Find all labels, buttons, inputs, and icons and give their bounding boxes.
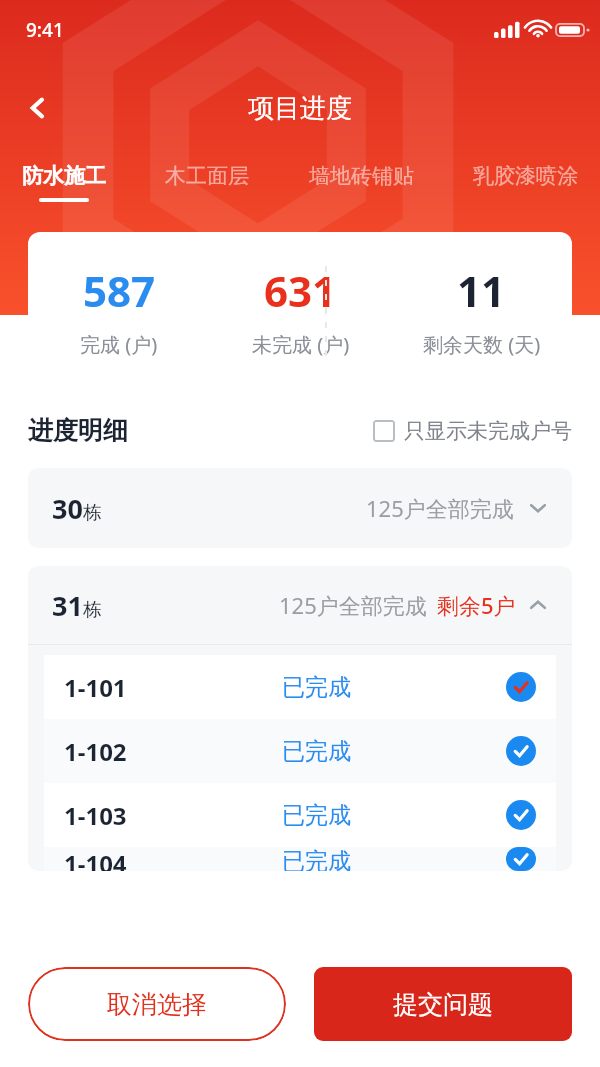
button[interactable]: 1-101 — [64, 655, 536, 719]
staticText: 30 — [52, 490, 83, 527]
staticText: 125户全部完成 — [366, 493, 514, 523]
staticText: 1-104 — [64, 847, 127, 871]
staticText: 取消选择 — [107, 989, 207, 1020]
staticText: 未完成 (户) — [252, 331, 350, 358]
button[interactable]: 乳胶漆喷涂 — [473, 163, 578, 202]
staticText: 已完成 — [282, 673, 351, 702]
other: Completed — [506, 800, 536, 830]
staticText: 栋 — [83, 501, 102, 525]
button[interactable]: 1-104 — [64, 847, 536, 871]
other: Completed — [506, 736, 536, 766]
button[interactable]: 只显示未完成户号 — [373, 418, 572, 444]
staticText: 已完成 — [282, 847, 351, 871]
button[interactable]: 木工面层 — [165, 163, 249, 202]
button[interactable]: 30 — [28, 468, 572, 548]
button[interactable]: Back — [14, 84, 62, 132]
other: Completed — [506, 847, 536, 871]
button[interactable]: 587 — [28, 232, 210, 387]
button[interactable]: 取消选择 — [28, 967, 286, 1041]
staticText: 1-102 — [64, 735, 127, 768]
button[interactable]: 防水施工 — [22, 163, 106, 202]
staticText: 9:41 — [26, 17, 64, 43]
staticText: 587 — [83, 262, 156, 319]
staticText: 项目进度 — [248, 92, 352, 125]
staticText: 125户全部完成 — [279, 590, 427, 620]
other: Completed — [506, 672, 536, 702]
button[interactable]: 31 — [52, 566, 548, 644]
staticText: 提交问题 — [393, 989, 493, 1020]
staticText: 631 — [264, 262, 337, 319]
button[interactable]: 提交问题 — [314, 967, 572, 1041]
staticText: 已完成 — [282, 801, 351, 830]
staticText: 剩余5户 — [437, 590, 516, 620]
button[interactable]: 631 — [210, 232, 391, 387]
staticText: 墙地砖铺贴 — [309, 163, 414, 189]
staticText: 31 — [52, 587, 83, 624]
staticText: 1-101 — [64, 671, 127, 704]
button[interactable]: 11 — [391, 232, 572, 387]
staticText: 木工面层 — [165, 163, 249, 189]
button[interactable]: 1-103 — [64, 783, 536, 847]
staticText: 1-103 — [64, 799, 127, 832]
button[interactable]: 1-102 — [64, 719, 536, 783]
staticText: 11 — [457, 262, 506, 319]
staticText: 已完成 — [282, 737, 351, 766]
staticText: 防水施工 — [22, 163, 106, 189]
staticText: 进度明细 — [28, 415, 128, 446]
staticText: 栋 — [83, 598, 102, 622]
staticText: 剩余天数 (天) — [423, 331, 541, 358]
staticText: 完成 (户) — [80, 331, 158, 358]
staticText: 乳胶漆喷涂 — [473, 163, 578, 189]
button[interactable]: 墙地砖铺贴 — [309, 163, 414, 202]
staticText: 只显示未完成户号 — [404, 418, 572, 444]
